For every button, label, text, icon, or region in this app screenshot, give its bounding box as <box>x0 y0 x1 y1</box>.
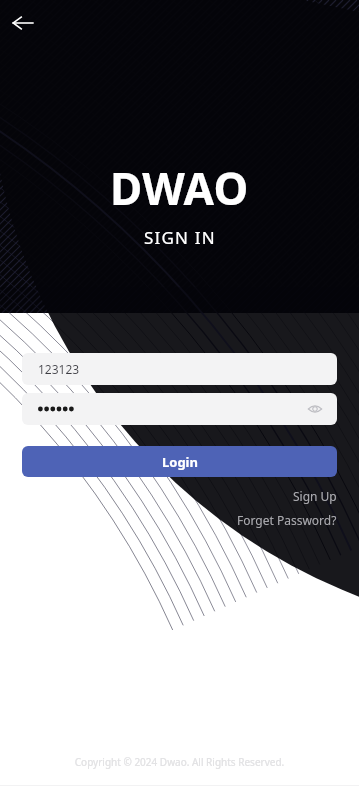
button[interactable]: Show password <box>305 399 325 419</box>
staticText: Sign Up <box>293 488 337 504</box>
button[interactable]: Login <box>22 446 337 477</box>
staticText: DWAO <box>110 158 249 218</box>
button[interactable]: Back <box>6 6 40 40</box>
button[interactable]: Show password <box>22 393 337 425</box>
staticText: SIGN IN <box>144 226 216 249</box>
staticText: Login <box>162 453 198 471</box>
staticText: 123123 <box>38 361 80 377</box>
button[interactable]: Sign Up <box>293 488 337 504</box>
staticText: Copyright © 2024 Dwao. All Rights Reserv… <box>0 755 359 769</box>
button[interactable]: Forget Password? <box>237 512 337 528</box>
staticText: Forget Password? <box>237 512 337 528</box>
button[interactable]: 123123 <box>22 353 337 385</box>
